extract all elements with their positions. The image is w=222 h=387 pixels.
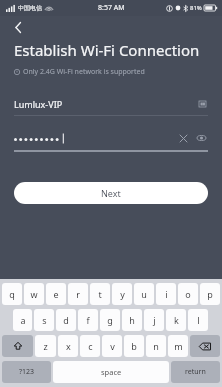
staticText: r (76, 288, 80, 300)
staticText: q (9, 288, 15, 300)
button[interactable]: Back (0, 16, 36, 38)
button[interactable]: v (102, 335, 122, 357)
button[interactable]: m (168, 335, 188, 357)
staticText: k (174, 314, 179, 326)
button[interactable]: o (178, 283, 198, 305)
staticText: space (101, 367, 122, 377)
staticText: n (153, 340, 159, 352)
button[interactable]: space (53, 361, 169, 383)
button[interactable]: Clear password (176, 131, 190, 145)
staticText: Lumlux-VIP (14, 98, 63, 110)
staticText: Next (101, 187, 121, 199)
button[interactable]: n (146, 335, 166, 357)
other: Choose network (196, 98, 208, 110)
button[interactable]: c (80, 335, 100, 357)
button[interactable]: h (122, 309, 142, 331)
button[interactable]: return (171, 361, 220, 383)
button[interactable]: f (78, 309, 98, 331)
staticText: o (185, 288, 191, 300)
button[interactable]: b (124, 335, 144, 357)
button[interactable]: Show password (194, 131, 208, 145)
staticText: g (107, 314, 113, 326)
staticText: 81% (190, 4, 202, 12)
button[interactable]: j (144, 309, 164, 331)
staticText: t (98, 288, 102, 300)
button[interactable]: ?123 (2, 361, 51, 383)
staticText: h (129, 314, 135, 326)
staticText: 中国电信 (18, 4, 42, 12)
staticText: j (153, 314, 156, 326)
button[interactable]: g (100, 309, 120, 331)
button[interactable]: z (35, 335, 56, 357)
button[interactable]: e (46, 283, 66, 305)
staticText: x (66, 340, 71, 352)
button[interactable]: q (2, 283, 22, 305)
staticText: s (42, 314, 47, 326)
button[interactable]: k (166, 309, 186, 331)
staticText: 8:57 AM (98, 3, 125, 13)
staticText: e (53, 288, 59, 300)
staticText: w (30, 288, 38, 300)
staticText: f (86, 314, 90, 326)
button[interactable]: Next (14, 182, 208, 204)
staticText: Only 2.4G Wi-Fi network is supported (23, 67, 145, 77)
button[interactable]: Shift (2, 335, 33, 357)
button[interactable]: d (56, 309, 76, 331)
button[interactable]: p (200, 283, 220, 305)
button[interactable]: y (112, 283, 132, 305)
staticText: ?123 (19, 367, 35, 377)
staticText: Establish Wi-Fi Connection (14, 40, 200, 60)
button[interactable]: i (156, 283, 176, 305)
staticText: p (207, 288, 213, 300)
staticText: l (197, 314, 200, 326)
staticText: b (131, 340, 137, 352)
staticText: y (120, 288, 125, 300)
button[interactable]: Lumlux-VIP (14, 93, 208, 115)
button[interactable]: u (134, 283, 154, 305)
staticText: return (185, 367, 206, 377)
staticText: c (88, 340, 93, 352)
staticText: z (43, 340, 48, 352)
button[interactable]: a (13, 309, 32, 331)
staticText: a (20, 314, 26, 326)
button[interactable]: Backspace (190, 335, 220, 357)
staticText: v (110, 340, 115, 352)
button[interactable]: l (188, 309, 208, 331)
staticText: u (141, 288, 147, 300)
button[interactable]: s (34, 309, 54, 331)
button[interactable]: t (90, 283, 110, 305)
button[interactable]: w (24, 283, 44, 305)
staticText: i (165, 288, 168, 300)
staticText: d (63, 314, 69, 326)
button[interactable]: x (58, 335, 78, 357)
staticText: m (174, 340, 183, 352)
button[interactable]: Clear password (14, 126, 208, 150)
button[interactable]: r (68, 283, 88, 305)
